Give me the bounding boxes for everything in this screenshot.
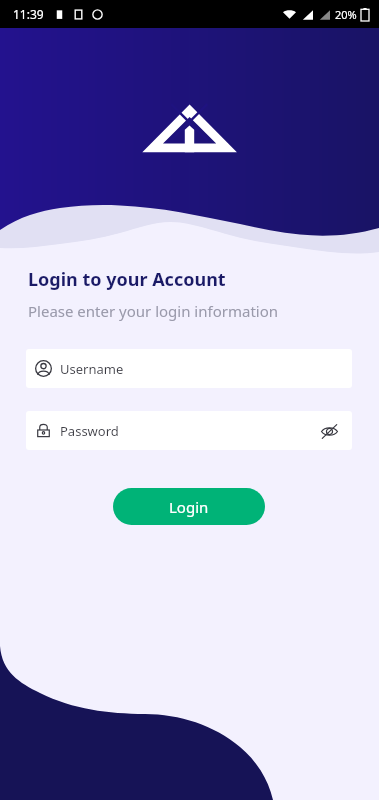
staticText: Please enter your login information [28,301,279,321]
button[interactable]: Show password [316,418,342,444]
staticText: Login [169,497,209,517]
staticText: Password [60,422,119,440]
staticText: 11:39 [13,6,44,22]
staticText: Login to your Account [28,267,226,292]
button[interactable]: Login [113,488,265,525]
staticText: 20% [335,7,357,22]
button[interactable]: Username [26,349,352,388]
staticText: Username [60,360,124,378]
button[interactable]: Password [26,411,352,450]
